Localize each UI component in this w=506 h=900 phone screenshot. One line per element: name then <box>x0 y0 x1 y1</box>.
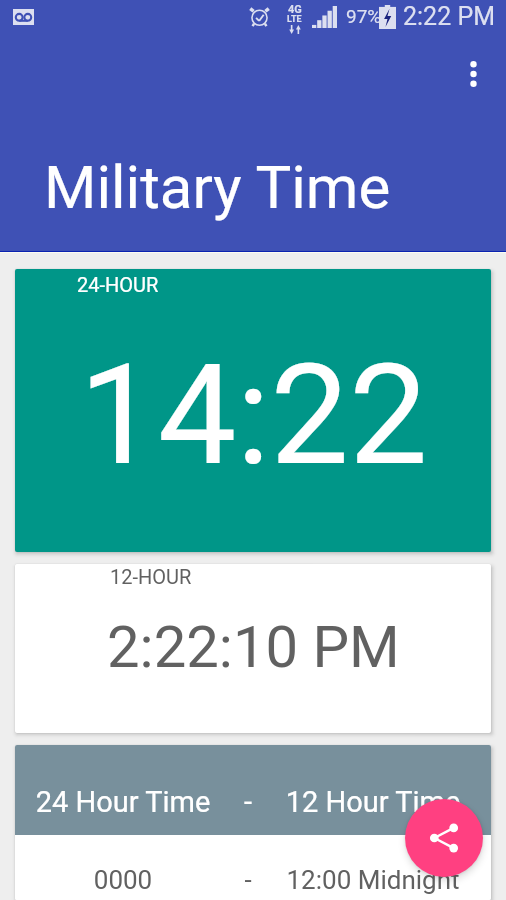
staticText: 12 Hour Time <box>269 785 477 819</box>
button[interactable]: More options <box>449 50 497 98</box>
staticText: 24-HOUR <box>77 273 159 296</box>
staticText: 14:22 <box>79 333 428 497</box>
staticText: 2:22:10 PM <box>107 613 400 681</box>
staticText: 97% <box>346 5 382 27</box>
staticText: 4G <box>288 3 302 16</box>
staticText: 2:22 PM <box>403 2 496 31</box>
button[interactable]: 24-HOUR <box>15 269 491 552</box>
staticText: 0000 <box>19 865 227 895</box>
staticText: - <box>227 785 269 819</box>
button[interactable]: Share <box>405 799 483 877</box>
staticText: 24 Hour Time <box>19 785 227 819</box>
staticText: LTE <box>287 14 302 25</box>
staticText: - <box>227 865 269 895</box>
button[interactable]: 12-HOUR <box>15 564 491 733</box>
staticText: 12-HOUR <box>110 565 192 588</box>
staticText: 12:00 Midnight <box>269 865 477 895</box>
staticText: Military Time <box>44 152 391 222</box>
button[interactable]: 24 Hour Time <box>15 745 491 835</box>
button[interactable]: 0000 <box>15 835 491 900</box>
